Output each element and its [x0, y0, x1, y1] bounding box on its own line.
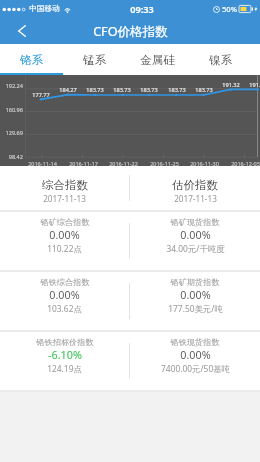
button[interactable]: 金属硅: [126, 44, 189, 75]
button[interactable]: 铬矿期货指数: [130, 272, 260, 330]
button[interactable]: 估价指数: [130, 166, 260, 210]
staticText: 铬铁现货指数: [170, 337, 220, 347]
button[interactable]: 铬铁现货指数: [130, 332, 260, 390]
staticText: 34.00元/千吨度: [166, 243, 225, 254]
staticText: 2016-11-17: [69, 160, 98, 167]
staticText: 铬铁招标价指数: [36, 337, 94, 347]
staticText: 铬系: [20, 53, 43, 67]
staticText: 铬铁综合指数: [40, 277, 90, 287]
button[interactable]: 铬矿现货指数: [130, 212, 260, 270]
staticText: 110.22点: [47, 243, 82, 254]
button[interactable]: 铬系: [0, 44, 63, 75]
staticText: 金属硅: [140, 53, 175, 67]
staticText: 估价指数: [172, 178, 218, 192]
staticText: 2017-11-13: [174, 193, 217, 204]
staticText: 2016-11-14: [28, 160, 57, 167]
staticText: 中国移动: [29, 4, 60, 14]
staticText: 191.32: [222, 81, 240, 89]
staticText: 镍系: [209, 53, 232, 67]
button[interactable]: 铬矿综合指数: [0, 212, 129, 270]
staticText: 09:33: [130, 3, 154, 16]
staticText: 0.00%: [49, 227, 80, 242]
staticText: 98.42: [8, 153, 23, 161]
button[interactable]: 锰系: [63, 44, 126, 75]
staticText: 2017-11-13: [43, 193, 86, 204]
button[interactable]: 镍系: [189, 44, 252, 75]
staticText: 183.73: [168, 86, 186, 94]
staticText: 183.73: [195, 86, 213, 94]
button[interactable]: 铬铁综合指数: [0, 272, 129, 330]
staticText: 50%: [222, 4, 237, 14]
staticText: 锰系: [83, 53, 106, 67]
staticText: 2016-11-25: [150, 160, 179, 167]
staticText: 184.27: [59, 86, 77, 94]
staticText: 铬矿现货指数: [170, 217, 220, 227]
button[interactable]: 铬铁招标价指数: [0, 332, 129, 390]
staticText: 2016-11-30: [190, 160, 219, 167]
button[interactable]: Back: [0, 18, 43, 44]
staticText: CFO价格指数: [93, 23, 168, 40]
staticText: 2016-12-05: [231, 160, 260, 167]
staticText: 103.62点: [47, 303, 82, 314]
button[interactable]: 综合指数: [0, 166, 129, 210]
staticText: 183.73: [113, 86, 131, 94]
staticText: 177.77: [32, 91, 50, 99]
staticText: 160.96: [5, 106, 23, 114]
staticText: 铬矿综合指数: [40, 217, 90, 227]
staticText: -6.10%: [48, 347, 82, 362]
staticText: 191.32: [249, 81, 260, 89]
staticText: 0.00%: [180, 347, 211, 362]
staticText: 177.50美元/吨: [168, 303, 223, 314]
staticText: 2016-11-22: [109, 160, 138, 167]
staticText: 129.69: [5, 129, 23, 137]
staticText: 铬矿期货指数: [170, 277, 220, 287]
staticText: 0.00%: [180, 227, 211, 242]
staticText: 7400.00元/50基吨: [161, 363, 230, 374]
staticText: 124.19点: [47, 363, 82, 374]
staticText: 0.00%: [49, 287, 80, 302]
staticText: 综合指数: [42, 178, 88, 192]
staticText: 192.24: [5, 82, 23, 90]
staticText: 183.73: [140, 86, 158, 94]
staticText: 0.00%: [180, 287, 211, 302]
staticText: 183.73: [86, 86, 104, 94]
